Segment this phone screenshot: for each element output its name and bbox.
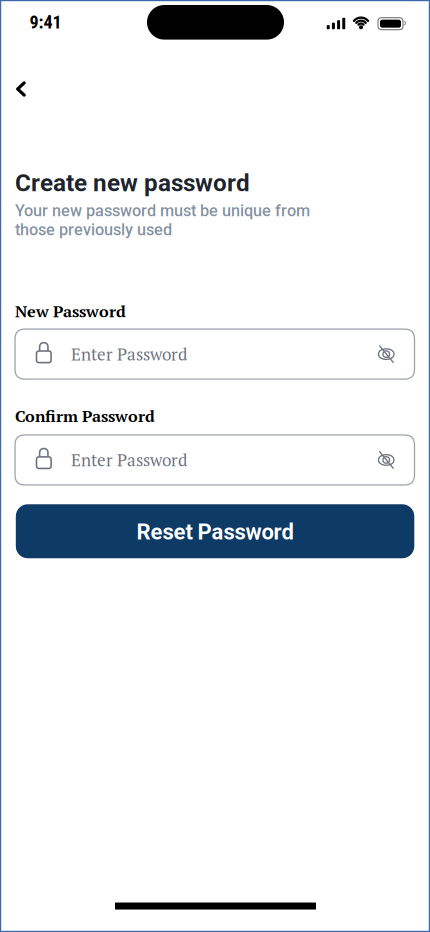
button[interactable]: Enter Password [15,435,414,485]
staticText: Confirm Password [15,405,155,427]
button[interactable]: Show password [378,346,414,362]
staticText: Create new password [15,169,250,197]
button[interactable]: Reset Password [16,504,414,558]
button[interactable]: Show password [378,452,414,468]
button[interactable]: Back [1,69,41,109]
button[interactable]: Enter Password [15,329,414,379]
staticText: 9:41 [29,12,61,33]
staticText: Enter Password [71,343,187,365]
staticText: Enter Password [71,449,187,471]
staticText: Reset Password [137,519,294,545]
staticText: New Password [15,300,126,322]
staticText: Your new password must be unique from th… [15,201,310,239]
